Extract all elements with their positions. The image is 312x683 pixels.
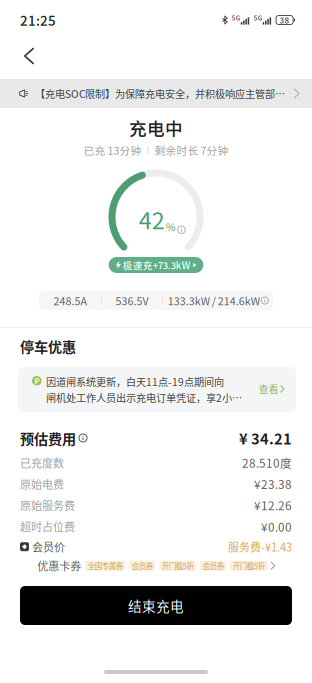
staticText: 优惠卡券 <box>37 558 81 574</box>
staticText: 42 <box>139 202 165 236</box>
staticText: 预估费用 <box>20 428 76 448</box>
staticText: % <box>166 219 176 234</box>
staticText: 因道闸系统更新，白天11点-19点期间向 <box>46 374 224 389</box>
staticText: +73.3kW <box>153 258 191 272</box>
staticText: 28.510度 <box>242 454 292 471</box>
staticText: 剩余时长 7分钟 <box>154 142 228 158</box>
staticText: 开门槛5折 <box>233 560 265 571</box>
staticText: 服务费-¥1.43 <box>228 539 292 555</box>
staticText: ¥12.26 <box>254 497 292 514</box>
staticText: 248.5A <box>53 293 86 308</box>
staticText: ¥0.00 <box>261 518 292 535</box>
staticText: 已充 13分钟 <box>83 142 141 158</box>
button[interactable]: P <box>18 367 296 412</box>
staticText: 已充度数 <box>20 455 64 471</box>
button[interactable]: 结束充电 <box>20 586 292 625</box>
staticText: 5G <box>254 13 262 22</box>
staticText: ¥23.38 <box>254 475 292 492</box>
staticText: 充电中 <box>129 115 183 140</box>
button[interactable]: 优惠卡券 <box>37 556 275 575</box>
staticText: 原始服务费 <box>20 497 75 513</box>
staticText: 5G <box>232 13 240 22</box>
staticText: 全国专属券 <box>88 560 123 571</box>
staticText: 开门槛5折 <box>162 560 194 571</box>
staticText: 查看 <box>259 381 279 396</box>
staticText: 会员券 <box>132 560 153 571</box>
staticText: ¥ 34.21 <box>239 427 292 449</box>
staticText: P <box>34 375 39 387</box>
staticText: 结束充电 <box>128 596 184 615</box>
staticText: 原始电费 <box>20 476 64 492</box>
staticText: 21:25 <box>20 10 56 30</box>
button[interactable]: Back <box>7 40 51 72</box>
button[interactable]: 【充电SOC限制】为保障充电安全，并积极响应主管部… <box>0 79 312 108</box>
staticText: 536.5V <box>115 293 148 308</box>
staticText: 超时占位费 <box>20 518 75 534</box>
staticText: 【充电SOC限制】为保障充电安全，并积极响应主管部… <box>35 86 285 101</box>
staticText: 停车优惠 <box>20 336 76 356</box>
staticText: 会员券 <box>203 560 224 571</box>
staticText: 闸机处工作人员出示充电订单凭证，享2小… <box>46 390 242 405</box>
staticText: 极速充 <box>123 258 153 272</box>
staticText: 38 <box>280 14 290 26</box>
staticText: 133.3kW / 214.6kW <box>168 293 260 308</box>
staticText: 会员价 <box>32 539 65 555</box>
